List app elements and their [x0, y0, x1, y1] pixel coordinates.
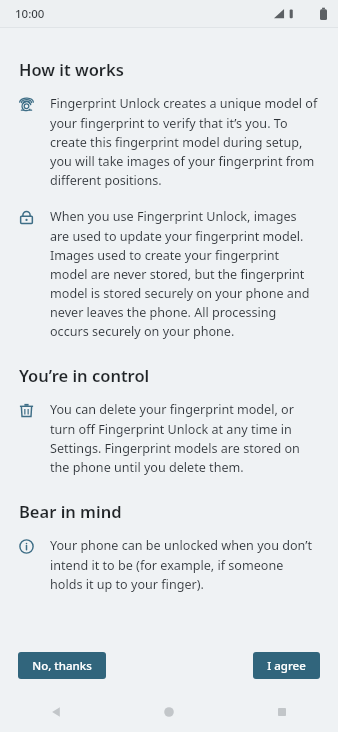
staticText: No, thanks	[32, 658, 92, 673]
staticText: When you use Fingerprint Unlock, images …	[50, 208, 318, 340]
button[interactable]: Recents	[225, 691, 338, 732]
button[interactable]: Back	[0, 691, 112, 732]
staticText: You’re in control	[19, 364, 150, 386]
staticText: You can delete your fingerprint model, o…	[50, 401, 318, 476]
staticText: I agree	[267, 658, 306, 673]
button[interactable]: Home	[112, 691, 225, 732]
staticText: 10:00	[15, 6, 45, 22]
button[interactable]: No, thanks	[18, 652, 106, 679]
staticText: Bear in mind	[19, 500, 122, 522]
button[interactable]: I agree	[253, 652, 320, 679]
staticText: How it works	[19, 58, 124, 80]
staticText: Fingerprint Unlock creates a unique mode…	[50, 95, 318, 189]
staticText: Your phone can be unlocked when you don’…	[50, 537, 318, 593]
